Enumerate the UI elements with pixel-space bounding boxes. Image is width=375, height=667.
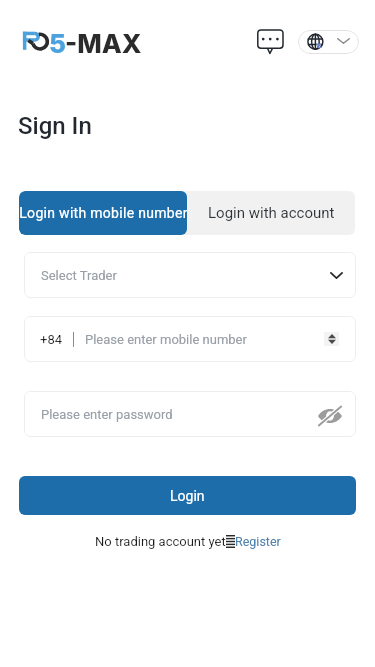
button[interactable]: +84: [24, 316, 356, 362]
staticText: Login with account: [208, 204, 335, 222]
button[interactable]: Register: [235, 534, 281, 549]
button[interactable]: Change country code: [324, 332, 339, 346]
staticText: Please enter password: [41, 407, 173, 422]
staticText: 5: [49, 28, 66, 59]
button[interactable]: Login: [19, 476, 356, 515]
staticText: Sign In: [18, 112, 92, 140]
button[interactable]: Login with mobile number: [19, 191, 187, 235]
staticText: No trading account yet: [95, 534, 226, 549]
button[interactable]: Please enter password: [24, 391, 356, 437]
button[interactable]: Login with account: [187, 191, 355, 235]
button[interactable]: Chat support: [256, 28, 284, 56]
staticText: Login with mobile number: [19, 205, 187, 221]
staticText: Please enter mobile number: [85, 332, 247, 347]
staticText: +84: [40, 332, 62, 347]
staticText: Register: [235, 534, 281, 549]
button[interactable]: Show password: [317, 399, 347, 429]
staticText: Select Trader: [41, 268, 117, 283]
button[interactable]: Select Trader: [24, 252, 356, 298]
button[interactable]: Change language: [298, 30, 359, 54]
staticText: Login: [170, 488, 205, 504]
staticText: -MAX: [65, 28, 142, 59]
